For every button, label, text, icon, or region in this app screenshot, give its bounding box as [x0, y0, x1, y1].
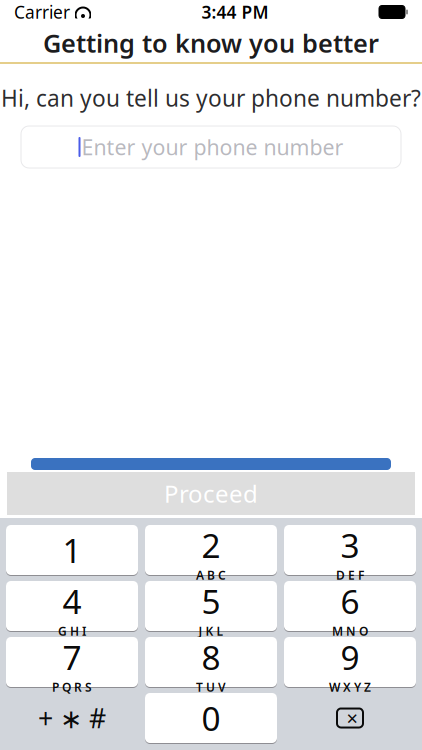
- staticText: T U V: [196, 679, 226, 695]
- staticText: 0: [201, 696, 220, 740]
- button[interactable]: 3: [284, 524, 416, 575]
- staticText: 5: [201, 579, 220, 623]
- staticText: 7: [62, 635, 81, 679]
- staticText: 9: [340, 635, 359, 679]
- staticText: 4: [62, 579, 81, 623]
- button[interactable]: Proceed: [7, 472, 415, 515]
- staticText: Proceed: [164, 478, 258, 509]
- staticText: 3:44 PM: [201, 0, 268, 23]
- button[interactable]: Delete: [284, 692, 416, 743]
- button[interactable]: 7: [6, 636, 138, 687]
- staticText: P Q R S: [52, 679, 92, 695]
- staticText: W X Y Z: [329, 679, 371, 695]
- staticText: Enter your phone number: [81, 133, 343, 161]
- button[interactable]: 5: [145, 580, 277, 631]
- staticText: 1: [62, 528, 81, 572]
- button[interactable]: Plus, asterisk, pound: [6, 692, 138, 743]
- button[interactable]: 9: [284, 636, 416, 687]
- button[interactable]: 0: [145, 692, 277, 743]
- staticText: D E F: [336, 567, 364, 583]
- staticText: ×: [346, 705, 357, 731]
- staticText: Carrier: [14, 0, 70, 23]
- staticText: G H I: [58, 623, 86, 639]
- staticText: Getting to know you better: [43, 26, 379, 60]
- button[interactable]: 1: [6, 524, 138, 575]
- staticText: + ∗ #: [38, 700, 106, 736]
- button[interactable]: 2: [145, 524, 277, 575]
- staticText: Hi, can you tell us your phone number?: [1, 83, 421, 113]
- staticText: 8: [201, 635, 220, 679]
- button[interactable]: 6: [284, 580, 416, 631]
- button[interactable]: 8: [145, 636, 277, 687]
- button[interactable]: 4: [6, 580, 138, 631]
- staticText: M N O: [332, 623, 368, 639]
- staticText: 2: [201, 523, 220, 567]
- staticText: 6: [340, 579, 359, 623]
- staticText: A B C: [196, 567, 226, 583]
- staticText: 3: [340, 523, 359, 567]
- staticText: J K L: [198, 623, 223, 639]
- button[interactable]: Enter your phone number: [21, 126, 401, 168]
